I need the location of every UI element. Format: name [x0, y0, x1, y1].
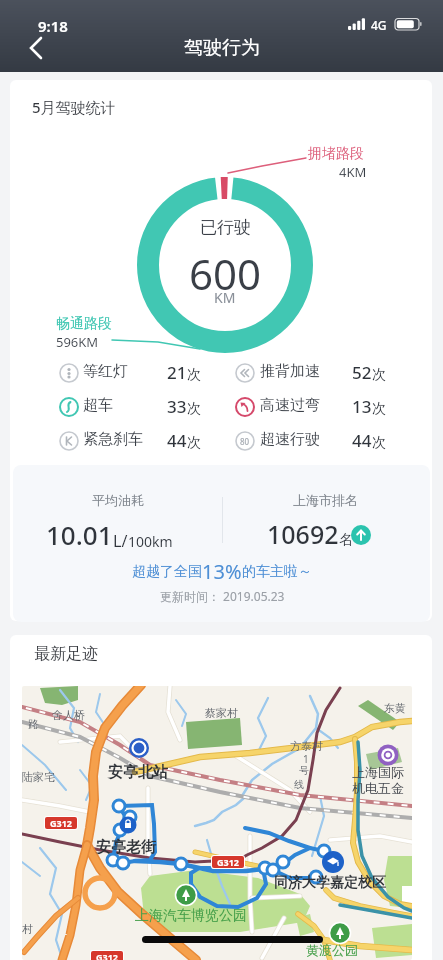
- staticText: 超车: [83, 396, 113, 415]
- staticText: G312: [217, 856, 239, 868]
- staticText: 安亭老街: [96, 838, 156, 857]
- staticText: 10.01: [46, 517, 113, 552]
- staticText: 畅通路段: [56, 315, 112, 333]
- staticText: 600: [189, 245, 262, 302]
- staticText: G312: [50, 817, 72, 829]
- staticText: 次: [372, 400, 386, 418]
- staticText: 21: [167, 361, 187, 384]
- staticText: 更新时间： 2019.05.23: [160, 588, 285, 604]
- staticText: 上海汽车博览公园: [135, 907, 247, 925]
- staticText: 黄渡公园: [306, 942, 358, 958]
- staticText: 1: [303, 752, 309, 766]
- staticText: 村: [22, 922, 33, 936]
- button[interactable]: [18, 30, 58, 66]
- staticText: 线: [294, 778, 304, 791]
- staticText: 44: [167, 429, 187, 452]
- staticText: 52: [352, 361, 372, 384]
- staticText: 高速过弯: [260, 396, 320, 415]
- staticText: 次: [372, 366, 386, 384]
- staticText: 超越了全国: [132, 563, 202, 581]
- staticText: 蔡家村: [205, 706, 238, 720]
- staticText: 安亭北站: [108, 763, 168, 782]
- staticText: 驾驶行为: [184, 36, 260, 60]
- staticText: 已行驶: [200, 217, 251, 238]
- staticText: 10692: [267, 517, 339, 551]
- staticText: 4G: [371, 17, 387, 33]
- staticText: 名: [339, 531, 353, 549]
- staticText: 9:18: [38, 16, 68, 36]
- staticText: 33: [167, 395, 187, 418]
- button[interactable]: [57, 425, 203, 457]
- staticText: 同济大学嘉定校区: [274, 874, 386, 892]
- staticText: 5月驾驶统计: [32, 97, 116, 117]
- button[interactable]: [233, 357, 388, 389]
- staticText: 机电五金: [352, 780, 404, 796]
- button[interactable]: 舍人桥: [22, 686, 412, 960]
- staticText: 44: [352, 429, 372, 452]
- staticText: 80: [240, 436, 250, 447]
- staticText: 13%: [202, 558, 242, 585]
- button[interactable]: [233, 425, 388, 457]
- staticText: 596KM: [56, 333, 99, 351]
- staticText: KM: [214, 288, 236, 307]
- staticText: 紧急刹车: [83, 430, 143, 449]
- staticText: 陆家宅: [22, 770, 55, 784]
- staticText: 100km: [128, 532, 173, 551]
- staticText: 次: [372, 434, 386, 452]
- staticText: 上海市排名: [293, 492, 358, 508]
- staticText: 方泰村: [290, 739, 323, 753]
- button[interactable]: [57, 391, 203, 423]
- staticText: 平均油耗: [92, 492, 144, 508]
- staticText: 上海国际: [352, 764, 404, 780]
- staticText: 推背加速: [260, 362, 320, 381]
- staticText: 次: [187, 434, 201, 452]
- staticText: 最新足迹: [34, 644, 98, 664]
- staticText: 舍人桥: [52, 708, 85, 722]
- staticText: 超速行驶: [260, 430, 320, 449]
- staticText: 4KM: [339, 163, 367, 181]
- staticText: 的车主啦～: [242, 563, 312, 581]
- button[interactable]: 超越了全国: [0, 558, 443, 585]
- staticText: L/: [113, 530, 128, 552]
- staticText: 号: [299, 764, 309, 777]
- staticText: 路: [28, 717, 39, 731]
- staticText: 13: [352, 395, 372, 418]
- staticText: 次: [187, 400, 201, 418]
- button[interactable]: [233, 391, 388, 423]
- button[interactable]: [57, 357, 203, 389]
- staticText: 次: [187, 366, 201, 384]
- staticText: G312: [96, 951, 118, 960]
- staticText: 拥堵路段: [308, 145, 364, 163]
- staticText: 等红灯: [83, 362, 128, 381]
- staticText: 东黄: [384, 701, 406, 715]
